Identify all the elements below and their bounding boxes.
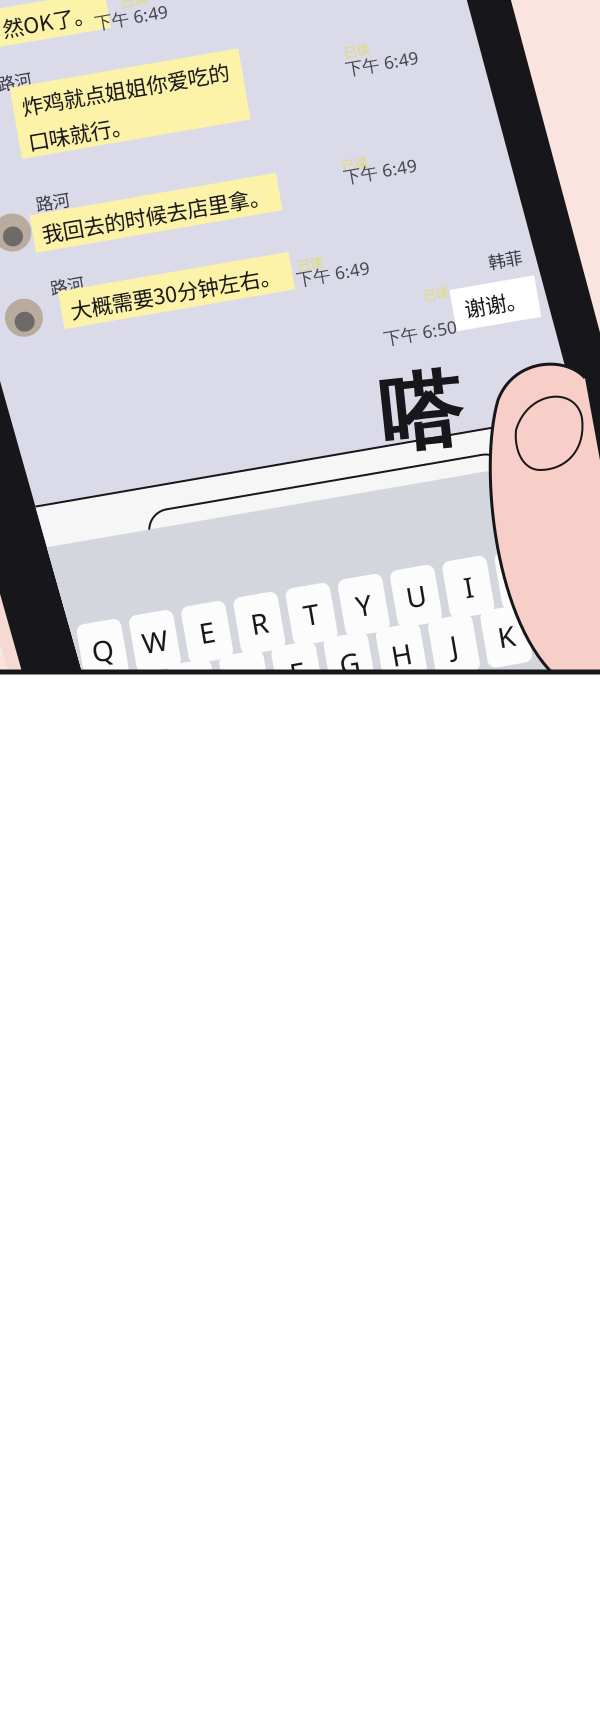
- staticText: H: [346, 649, 367, 687]
- staticText: R: [213, 594, 230, 632]
- staticText: J: [406, 649, 414, 687]
- staticText: Y: [320, 594, 336, 632]
- staticText: U: [371, 594, 391, 632]
- staticText: 已读: [381, 166, 407, 186]
- staticText: 炸鸡就点姐姐你爱吃的: [76, 48, 286, 79]
- staticText: O: [476, 594, 498, 632]
- staticText: 口味就行。: [76, 84, 181, 115]
- staticText: G: [294, 649, 314, 687]
- staticText: L: [508, 649, 523, 687]
- staticText: 韩菲: [509, 283, 543, 309]
- staticText: 大概需要30分钟左右。: [89, 257, 302, 288]
- staticText: 下午 6:49: [381, 176, 455, 200]
- staticText: S: [137, 649, 152, 687]
- staticText: 嗒: [379, 361, 462, 465]
- staticText: 下午 6:50: [393, 342, 467, 366]
- staticText: 路河: [73, 234, 107, 260]
- staticText: 已读: [402, 55, 428, 75]
- staticText: 谢谢。: [477, 323, 540, 353]
- staticText: Q: [52, 594, 74, 632]
- staticText: E: [161, 594, 177, 632]
- staticText: 已读: [439, 308, 465, 328]
- staticText: T: [267, 594, 283, 632]
- staticText: 我回去的时候去店里拿。: [74, 177, 305, 208]
- staticText: D: [188, 649, 208, 687]
- staticText: 下午 6:49: [317, 269, 391, 293]
- staticText: W: [103, 594, 129, 632]
- staticText: 已读: [320, 257, 346, 277]
- staticText: 路河: [56, 24, 90, 50]
- staticText: F: [243, 649, 258, 687]
- staticText: K: [454, 649, 471, 687]
- staticText: A: [83, 649, 101, 687]
